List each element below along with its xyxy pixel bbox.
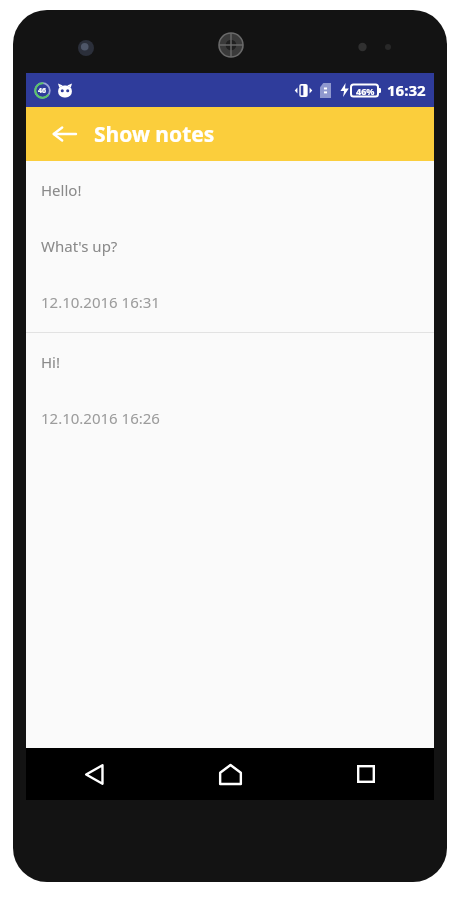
- staticText: What's up?: [41, 236, 118, 256]
- staticText: 12.10.2016 16:31: [41, 292, 160, 312]
- staticText: 16:32: [387, 80, 426, 100]
- button[interactable]: Home: [162, 748, 298, 800]
- button[interactable]: Hello!: [26, 161, 434, 332]
- staticText: Hello!: [41, 180, 82, 200]
- staticText: 46%: [356, 85, 375, 97]
- button[interactable]: Back: [26, 748, 162, 800]
- staticText: 46: [38, 86, 47, 96]
- button[interactable]: Hi!: [26, 333, 434, 448]
- button[interactable]: Recent apps: [298, 748, 434, 800]
- button[interactable]: Back: [42, 112, 86, 156]
- staticText: Show notes: [94, 120, 215, 149]
- staticText: Hi!: [41, 352, 61, 372]
- staticText: 12.10.2016 16:26: [41, 408, 160, 428]
